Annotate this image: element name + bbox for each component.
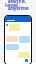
staticText: advice, anytime — [7, 0, 28, 12]
staticText: no waitlist — [9, 5, 26, 10]
staticText: Therapist-level — [5, 0, 31, 9]
